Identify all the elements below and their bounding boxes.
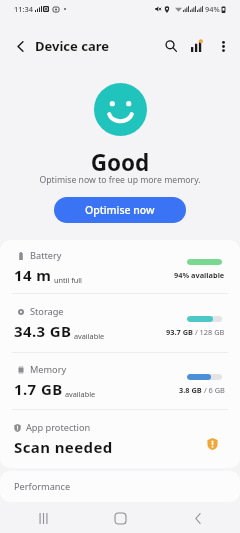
staticText: Memory	[30, 363, 67, 376]
button[interactable]: Storage	[0, 294, 240, 352]
button[interactable]: Usage	[184, 33, 210, 59]
button[interactable]: Recents	[8, 503, 78, 533]
staticText: 94%	[205, 4, 220, 14]
staticText: 11:34	[14, 4, 33, 14]
button[interactable]: Back	[5, 31, 35, 61]
staticText: App protection	[26, 421, 91, 434]
button[interactable]: More options	[210, 33, 236, 59]
staticText: Performance	[14, 480, 71, 493]
button[interactable]: App protection	[0, 410, 240, 468]
staticText: available	[63, 389, 96, 399]
staticText: available	[72, 331, 105, 341]
button[interactable]: Back	[163, 503, 233, 533]
staticText: / 128 GB	[193, 327, 225, 337]
button[interactable]: Battery	[0, 240, 240, 293]
staticText: 1.7 GB	[14, 379, 63, 399]
staticText: 14 m	[14, 265, 52, 285]
staticText: Optimise now to free up more memory.	[0, 174, 240, 186]
staticText: Storage	[30, 305, 64, 318]
staticText: 34.3 GB	[14, 321, 72, 341]
staticText: Scan needed	[14, 437, 113, 457]
staticText: Battery	[30, 249, 62, 262]
staticText: 3.8 GB	[179, 385, 202, 395]
staticText: until full	[52, 275, 82, 285]
staticText: Device care	[35, 37, 109, 55]
staticText: Good	[0, 147, 240, 178]
staticText: 93.7 GB	[166, 327, 193, 337]
staticText: Optimise now	[85, 203, 155, 217]
staticText: / 6 GB	[202, 385, 225, 395]
button[interactable]: Search	[158, 33, 184, 59]
button[interactable]: Home	[85, 503, 155, 533]
button[interactable]: Optimise now	[54, 197, 186, 223]
staticText: 94% available	[174, 270, 225, 280]
button[interactable]: Memory	[0, 353, 240, 409]
